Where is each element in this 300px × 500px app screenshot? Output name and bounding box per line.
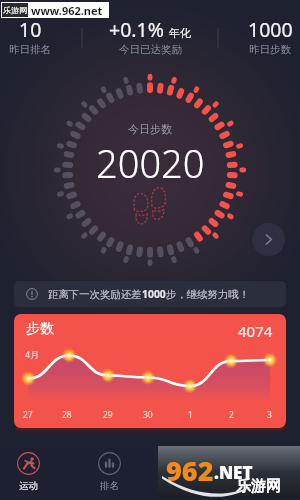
staticText: 距离下一次奖励还差 [48, 288, 142, 301]
staticText: 昨日步数 [249, 43, 291, 56]
staticText: 1 [188, 409, 193, 421]
staticText: 4074 [238, 321, 273, 341]
staticText: 乐游网 [236, 477, 281, 496]
staticText: 29 [103, 409, 113, 421]
staticText: 好友 [180, 480, 199, 492]
staticText: 我的 [261, 480, 280, 492]
staticText: 今日步数 [128, 122, 172, 136]
staticText: 962 [166, 452, 214, 489]
staticText: 步数 [26, 320, 54, 338]
staticText: 今日已达奖励 [119, 43, 182, 56]
staticText: 1000 [142, 287, 166, 301]
button[interactable]: 好友 [159, 452, 219, 494]
staticText: 30 [143, 409, 153, 421]
staticText: 28 [62, 409, 72, 421]
button[interactable]: 运动 [0, 452, 58, 494]
button[interactable]: 10 [0, 16, 90, 56]
button[interactable]: 距离下一次奖励还差 [14, 281, 286, 307]
staticText: 3 [267, 409, 272, 421]
staticText: 2 [229, 409, 234, 421]
staticText: 20020 [96, 137, 205, 189]
staticText: +0.1% [109, 16, 164, 43]
staticText: 昨日排名 [9, 43, 51, 56]
button[interactable]: 1000 [210, 16, 300, 56]
staticText: 步，继续努力哦！ [166, 288, 250, 301]
staticText: .NET [214, 461, 253, 484]
staticText: 年化 [169, 26, 191, 40]
button[interactable]: +0.1% [90, 16, 210, 56]
staticText: 27 [23, 409, 33, 421]
staticText: 4月 [25, 348, 40, 360]
staticText: 排名 [100, 480, 119, 492]
button[interactable]: 我的 [240, 452, 300, 494]
staticText: www.962.net [31, 3, 103, 18]
staticText: 乐游网 [3, 5, 27, 15]
button[interactable]: 排名 [79, 452, 139, 494]
button[interactable]: Next [252, 223, 285, 256]
button[interactable]: 步数 [14, 314, 286, 428]
staticText: 10 [19, 16, 42, 43]
staticText: 1000 [248, 16, 293, 43]
staticText: 运动 [19, 480, 38, 492]
